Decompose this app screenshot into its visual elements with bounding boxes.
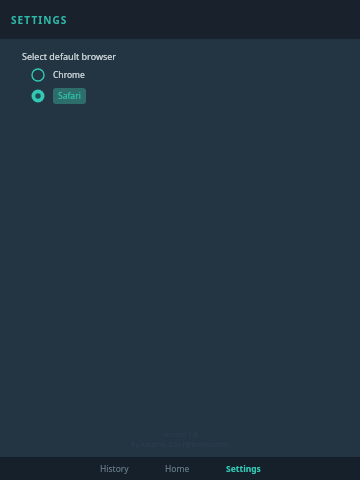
staticText: Chrome (53, 69, 85, 81)
button[interactable]: Settings (220, 459, 267, 479)
button[interactable]: Chrome (31, 66, 85, 84)
button[interactable]: History (94, 459, 135, 479)
button[interactable]: Safari (31, 86, 86, 106)
staticText: History (100, 463, 129, 475)
button[interactable]: Home (159, 459, 196, 479)
staticText: Settings (226, 463, 261, 475)
staticText: Safari (58, 90, 81, 102)
staticText: Home (165, 463, 190, 475)
staticText: Select default browser (22, 50, 117, 62)
staticText: SETTINGS (11, 13, 68, 27)
